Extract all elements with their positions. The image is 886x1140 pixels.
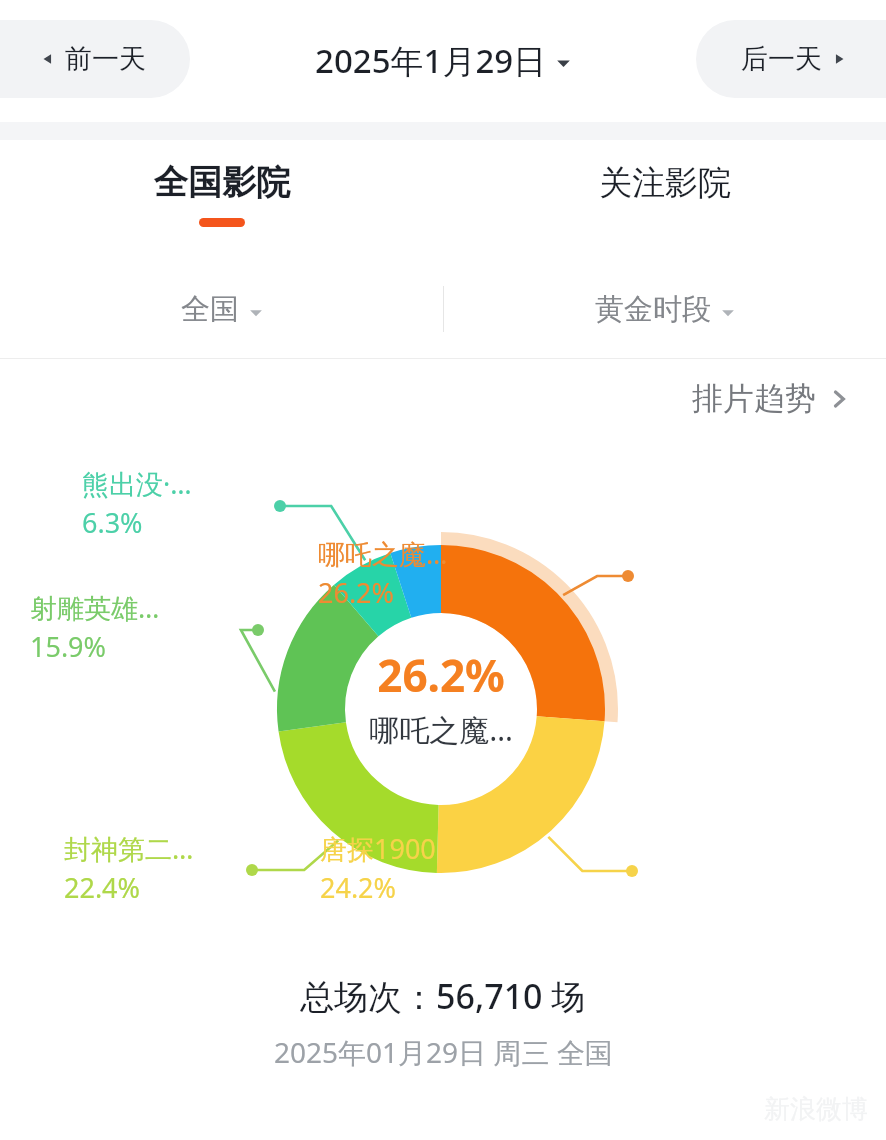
button[interactable]: 2025年1月29日 [315, 38, 571, 83]
staticText: 2025年1月29日 [315, 38, 547, 83]
staticText: 2025年01月29日 周三 全国 [274, 1033, 613, 1071]
staticText: 26.2% [377, 645, 505, 705]
button[interactable]: 关注影院 [443, 140, 886, 260]
staticText: 后一天 [741, 42, 822, 76]
staticText: 哪吒之魔… [369, 709, 513, 750]
staticText: 26.2% [318, 574, 395, 611]
staticText: 封神第二… [64, 830, 194, 867]
button[interactable]: 后一天 [696, 20, 886, 98]
staticText: 6.3% [82, 504, 143, 541]
staticText: 24.2% [320, 869, 397, 906]
button[interactable]: 全国 [0, 260, 443, 358]
staticText: 前一天 [65, 42, 146, 76]
button[interactable]: 排片趋势 [692, 379, 850, 418]
staticText: 总场次：56,710 场 [300, 973, 586, 1019]
staticText: 排片趋势 [692, 379, 816, 418]
staticText: 哪吒之魔… [318, 535, 448, 572]
staticText: 全国影院 [154, 161, 290, 204]
staticText: 22.4% [64, 869, 141, 906]
staticText: 射雕英雄… [30, 589, 160, 626]
staticText: 黄金时段 [595, 291, 711, 328]
button[interactable]: 全国影院 [0, 140, 443, 260]
button[interactable]: 黄金时段 [443, 260, 886, 358]
staticText: 关注影院 [599, 162, 731, 204]
button[interactable]: 前一天 [0, 20, 190, 98]
staticText: 15.9% [30, 628, 107, 665]
staticText: 唐探1900 [320, 830, 436, 867]
staticText: 全国 [181, 291, 239, 328]
staticText: 熊出没·… [82, 465, 192, 502]
staticText: 新浪微博 [764, 1093, 868, 1126]
